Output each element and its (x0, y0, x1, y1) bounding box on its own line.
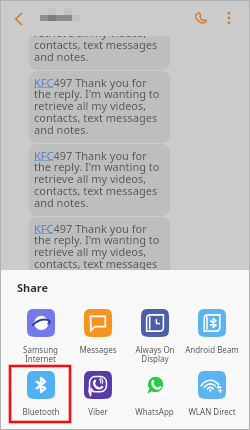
button[interactable]: Android Beam (183, 309, 240, 355)
button[interactable]: Messages (69, 309, 126, 355)
staticText: Android Beam (185, 344, 239, 355)
button[interactable]: KFC497 Thank you for the reply. I'm want… (29, 71, 170, 143)
staticText: Bluetooth (22, 406, 60, 417)
staticText: KFC497 Thank you for the reply. I'm want… (34, 221, 163, 284)
button[interactable]: KFC497 Thank you for the reply. I'm want… (29, 144, 170, 216)
button[interactable]: Always On Display (126, 309, 183, 365)
button[interactable]: Viber (69, 371, 126, 417)
staticText: Viber (88, 406, 108, 417)
button[interactable]: KFC497 Thank you for the reply. I'm want… (29, 0, 170, 70)
button[interactable]: Call (191, 8, 211, 28)
staticText: KFC497 Thank you for the reply. I'm want… (34, 2, 163, 65)
staticText: KFC497 Thank you for the reply. I'm want… (34, 75, 163, 138)
button[interactable]: WhatsApp (126, 371, 183, 417)
button[interactable]: More options (219, 8, 239, 28)
staticText: Always On Display (135, 344, 175, 365)
button[interactable]: Bluetooth (12, 371, 69, 417)
staticText: Messages (79, 344, 117, 355)
staticText: Samsung Internet (23, 344, 58, 365)
staticText: KFC497 Thank you for the reply. I'm want… (34, 148, 163, 211)
button[interactable]: Back (8, 8, 30, 30)
button[interactable]: Samsung Internet (12, 309, 69, 365)
button[interactable]: KFC497 Thank you for the reply. I'm want… (29, 217, 170, 289)
button[interactable]: WLAN Direct (183, 371, 240, 417)
staticText: Share (17, 280, 49, 295)
staticText: WLAN Direct (188, 406, 236, 417)
staticText: WhatsApp (135, 406, 174, 417)
